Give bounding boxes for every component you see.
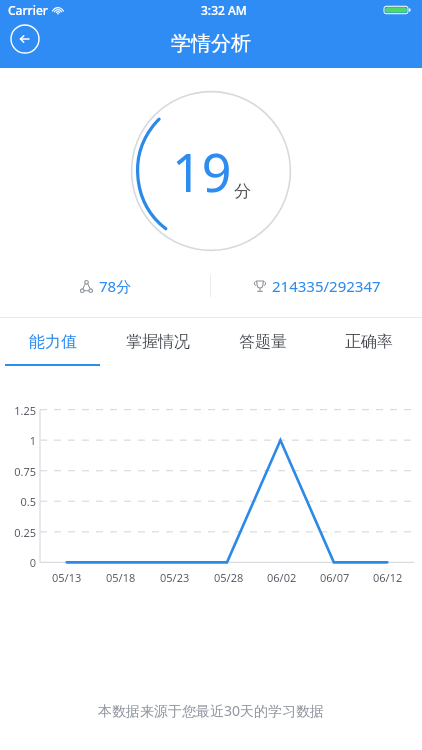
- button[interactable]: 掌握情况: [105, 318, 210, 366]
- staticText: 78分: [99, 276, 132, 296]
- staticText: 正确率: [345, 332, 393, 352]
- button[interactable]: 正确率: [316, 318, 422, 366]
- staticText: 1: [0, 433, 36, 448]
- staticText: 0.25: [0, 525, 36, 540]
- button[interactable]: 214335/292347: [211, 272, 422, 300]
- staticText: 05/18: [106, 570, 136, 585]
- staticText: 0: [0, 555, 36, 570]
- staticText: 本数据来源于您最近30天的学习数据: [0, 701, 422, 720]
- staticText: 学情分析: [171, 31, 251, 56]
- staticText: 05/23: [160, 570, 190, 585]
- staticText: 05/13: [52, 570, 82, 585]
- staticText: 0.5: [0, 494, 36, 509]
- staticText: 06/02: [267, 570, 297, 585]
- staticText: 19: [172, 136, 232, 207]
- staticText: 214335/292347: [272, 276, 381, 296]
- button[interactable]: 能力值: [0, 318, 105, 366]
- staticText: Carrier: [8, 2, 48, 18]
- staticText: 分: [234, 181, 251, 202]
- staticText: 1.25: [0, 403, 36, 418]
- staticText: 0.75: [0, 464, 36, 479]
- staticText: 06/07: [320, 570, 350, 585]
- staticText: 答题量: [239, 332, 287, 352]
- button[interactable]: 答题量: [210, 318, 316, 366]
- button[interactable]: 78分: [0, 272, 210, 300]
- staticText: 05/28: [214, 570, 244, 585]
- staticText: 能力值: [29, 332, 77, 352]
- button[interactable]: Back: [10, 24, 40, 54]
- staticText: 掌握情况: [126, 332, 190, 352]
- staticText: 3:32 AM: [201, 2, 247, 18]
- staticText: 06/12: [373, 570, 403, 585]
